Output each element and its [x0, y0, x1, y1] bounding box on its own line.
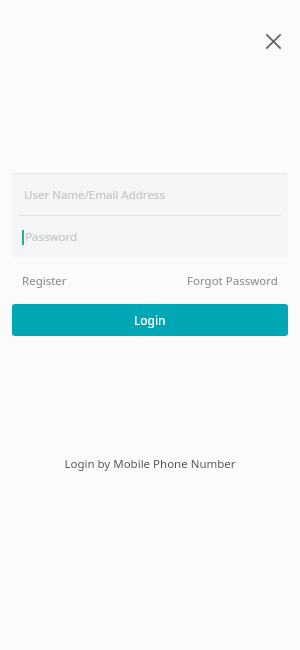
- button[interactable]: Login by Mobile Phone Number: [54, 452, 246, 476]
- button[interactable]: Register: [22, 270, 67, 292]
- button[interactable]: Forgot Password: [187, 270, 278, 292]
- button[interactable]: User Name/Email Address: [12, 174, 288, 215]
- staticText: User Name/Email Address: [24, 187, 165, 203]
- button[interactable]: Password: [12, 216, 288, 257]
- staticText: Forgot Password: [187, 273, 278, 289]
- staticText: Login by Mobile Phone Number: [64, 456, 236, 472]
- staticText: Password: [25, 229, 78, 245]
- staticText: Login: [134, 312, 166, 328]
- button[interactable]: Close: [258, 26, 288, 56]
- staticText: Register: [22, 273, 67, 289]
- button[interactable]: Login: [12, 304, 288, 336]
